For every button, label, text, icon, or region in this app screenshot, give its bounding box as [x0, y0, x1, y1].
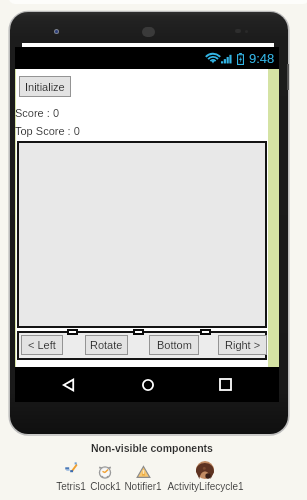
button[interactable]: Home: [135, 372, 160, 397]
button[interactable]: Initialize: [20, 77, 70, 96]
button[interactable]: Clock1: [45, 460, 165, 473]
staticText: Score : 0: [15, 107, 60, 119]
staticText: ActivityLifecycle1: [167, 481, 244, 492]
staticText: Notifier1: [124, 481, 162, 492]
button[interactable]: Back: [56, 372, 81, 397]
staticText: Right >: [225, 339, 261, 351]
staticText: 9:48: [249, 51, 275, 66]
button[interactable]: Recents: [213, 372, 238, 397]
staticText: < Left: [28, 339, 56, 351]
button[interactable]: ActivityLifecycle1: [145, 460, 265, 478]
staticText: Non-visible components: [91, 442, 213, 454]
button[interactable]: Rotate: [86, 336, 127, 354]
staticText: Top Score : 0: [15, 125, 80, 137]
staticText: Initialize: [25, 81, 65, 93]
staticText: Clock1: [90, 481, 121, 492]
button[interactable]: Right >: [219, 336, 266, 354]
staticText: Tetris1: [56, 481, 86, 492]
button[interactable]: Bottom: [150, 336, 198, 354]
staticText: Bottom: [157, 339, 192, 351]
button[interactable]: < Left: [22, 336, 62, 354]
button[interactable]: Tetris1: [11, 460, 131, 473]
button[interactable]: Notifier1: [83, 460, 203, 472]
staticText: Rotate: [90, 339, 123, 351]
